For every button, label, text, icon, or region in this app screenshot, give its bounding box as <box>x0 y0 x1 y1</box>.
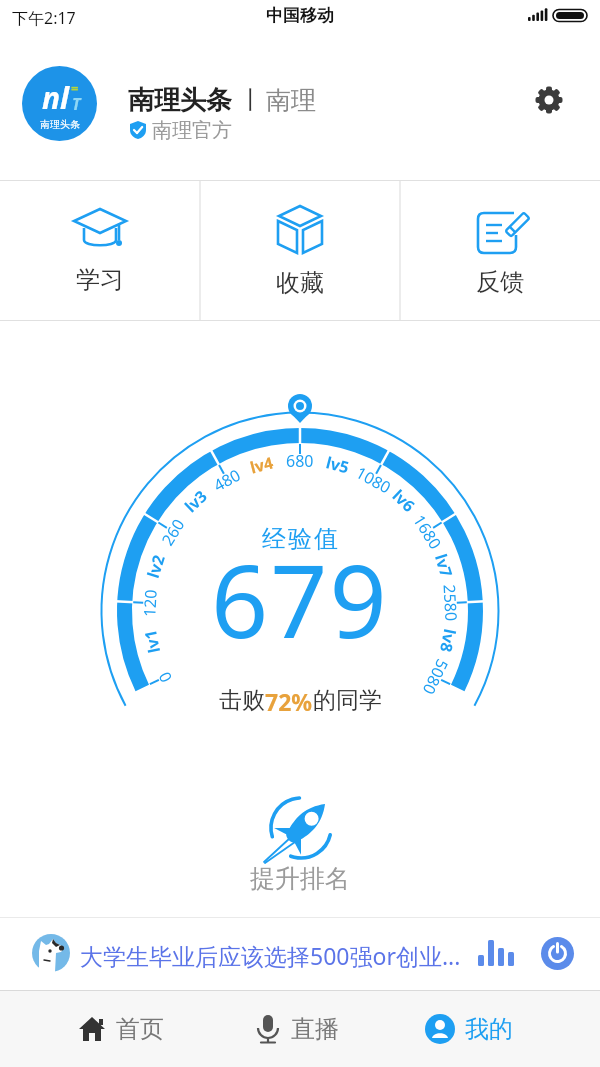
staticText: 0 <box>153 668 177 686</box>
staticText: 72% <box>265 686 313 716</box>
staticText: 首页 <box>116 1014 164 1044</box>
staticText: 丨 <box>239 85 263 115</box>
staticText: 南理官方 <box>152 118 232 143</box>
staticText: T <box>72 93 81 115</box>
button[interactable]: 我的 <box>425 990 525 1067</box>
button[interactable]: 首页 <box>78 990 178 1067</box>
staticText: 1680 <box>408 510 447 553</box>
staticText: lv7 <box>430 551 458 581</box>
button[interactable] <box>534 85 564 115</box>
button[interactable]: 收藏 <box>200 180 400 321</box>
staticText: 680 <box>286 450 314 472</box>
staticText: 的同学 <box>313 686 382 715</box>
staticText: 提升排名 <box>250 863 350 894</box>
button[interactable]: 提升排名 <box>230 763 370 893</box>
staticText: lv6 <box>388 485 420 517</box>
staticText: 中国移动 <box>266 5 334 26</box>
staticText: lv8 <box>435 627 461 655</box>
staticText: 反馈 <box>476 267 524 297</box>
staticText: = <box>71 79 79 97</box>
button[interactable]: 学习 <box>0 180 200 321</box>
button[interactable]: 反馈 <box>400 180 600 321</box>
staticText: 直播 <box>291 1014 339 1044</box>
staticText: lv4 <box>248 451 276 479</box>
staticText: 2580 <box>438 584 462 622</box>
staticText: 击败 <box>219 686 265 715</box>
staticText: lv2 <box>142 551 170 581</box>
staticText: 南理头条 <box>40 118 80 131</box>
button[interactable] <box>541 937 574 970</box>
staticText: 260 <box>156 514 190 550</box>
button[interactable]: nl <box>22 66 97 141</box>
staticText: 大学生毕业后应该选择500强or创业... <box>80 940 461 971</box>
button[interactable]: 直播 <box>255 990 355 1067</box>
staticText: 南理 <box>266 85 316 116</box>
staticText: 我的 <box>465 1014 513 1044</box>
staticText: lv1 <box>139 627 165 655</box>
staticText: 480 <box>209 464 245 496</box>
staticText: lv5 <box>324 451 352 479</box>
button[interactable]: 大学生毕业后应该选择500强or创业... <box>0 917 600 990</box>
staticText: nl <box>42 77 70 118</box>
staticText: 1080 <box>352 461 395 499</box>
staticText: lv3 <box>180 485 212 517</box>
staticText: 5080 <box>417 656 453 698</box>
staticText: 经验值 <box>261 524 339 552</box>
staticText: 下午2:17 <box>12 7 76 29</box>
staticText: 收藏 <box>276 268 324 298</box>
staticText: 南理头条 <box>128 84 232 117</box>
staticText: 学习 <box>76 265 124 295</box>
staticText: 679 <box>211 531 389 655</box>
staticText: 120 <box>138 588 162 617</box>
